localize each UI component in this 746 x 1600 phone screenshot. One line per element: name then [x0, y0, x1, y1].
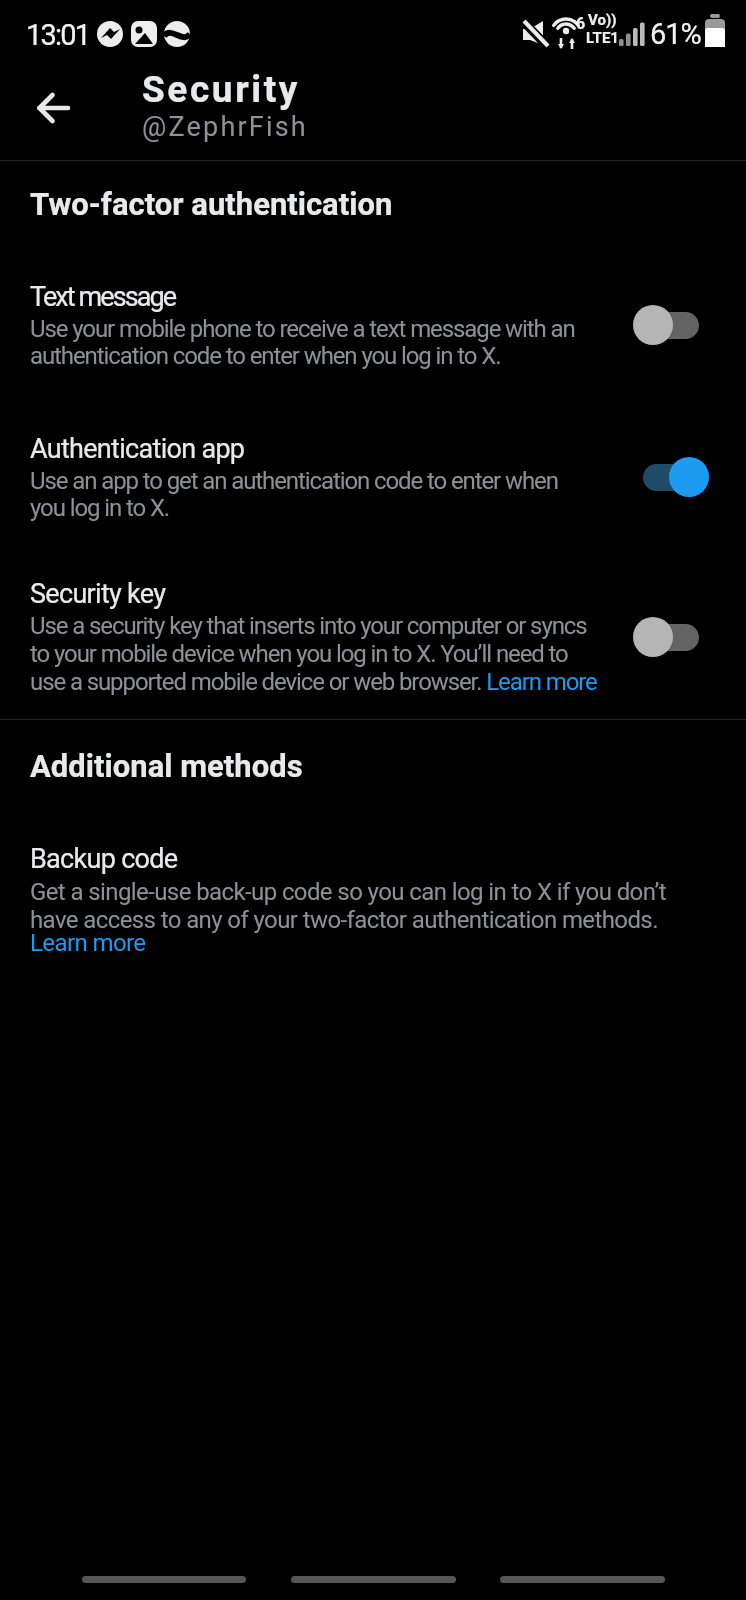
staticText: Backup code [30, 843, 178, 875]
staticText: @ZephrFish [142, 111, 308, 143]
staticText: Vo)) [588, 11, 617, 29]
staticText: Get a single-use back-up code so you can… [30, 878, 666, 934]
button[interactable]: Security key [30, 578, 709, 696]
button[interactable] [633, 455, 709, 499]
staticText: Use your mobile phone to receive a text … [30, 315, 575, 369]
staticText: Additional methods [30, 748, 303, 784]
staticText: Authentication app [30, 433, 245, 465]
button[interactable] [633, 615, 709, 659]
staticText: Security key [30, 578, 166, 610]
staticText: Two-factor authentication [30, 186, 393, 222]
button[interactable] [25, 79, 83, 137]
staticText: LTE1 [586, 29, 619, 47]
staticText: Text message [30, 281, 176, 313]
staticText: 13:01 [26, 18, 90, 52]
button[interactable]: Text message [30, 281, 709, 369]
button[interactable] [633, 303, 709, 347]
staticText: Learn more [30, 929, 146, 957]
staticText: Security [142, 68, 300, 111]
staticText: 61% [650, 17, 701, 51]
staticText: Use an app to get an authentication code… [30, 467, 558, 521]
button[interactable]: Backup code [30, 843, 746, 962]
staticText: Use a security key that inserts into you… [30, 612, 597, 696]
button[interactable]: Authentication app [30, 433, 709, 521]
staticText: 6 [576, 14, 586, 33]
